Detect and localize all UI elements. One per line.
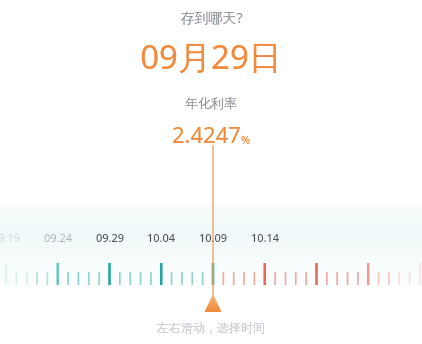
staticText: 09.29 bbox=[0, 230, 310, 245]
button[interactable]: 左右滑动，选择时间 bbox=[157, 320, 265, 335]
staticText: 2.4247 bbox=[172, 119, 241, 149]
staticText: 10.09 bbox=[13, 230, 413, 245]
staticText: 年化利率 bbox=[185, 95, 237, 111]
staticText: 10.04 bbox=[0, 230, 361, 245]
staticText: 09 bbox=[0, 230, 103, 245]
staticText: 存到哪天? bbox=[180, 8, 243, 27]
staticText: 09.24 bbox=[0, 230, 258, 245]
staticText: 09.19 bbox=[0, 230, 206, 245]
staticText: 09月29日 bbox=[140, 34, 282, 79]
button[interactable]: Date ruler, swipe to select time bbox=[0, 0, 422, 344]
staticText: 10.14 bbox=[65, 230, 422, 245]
staticText: 09.14 bbox=[0, 230, 154, 245]
staticText: % bbox=[241, 132, 251, 147]
